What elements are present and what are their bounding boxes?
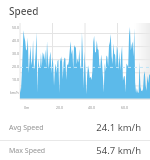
staticText: 0m: [24, 105, 30, 110]
staticText: 54.7 km/h: [96, 144, 141, 157]
button[interactable]: Max Speed: [0, 141, 150, 160]
staticText: km/h: [10, 90, 19, 95]
staticText: 20.0: [56, 105, 63, 110]
staticText: 60.0: [121, 105, 128, 110]
staticText: 30.0: [12, 51, 19, 56]
staticText: Avg Speed: [9, 123, 44, 133]
staticText: Speed: [9, 4, 39, 18]
staticText: 10.0: [12, 77, 19, 82]
staticText: 24.1 km/h: [96, 121, 141, 134]
staticText: 50.0: [12, 25, 19, 30]
staticText: 40.0: [12, 38, 19, 43]
staticText: Max Speed: [9, 146, 46, 156]
staticText: 20.0: [12, 64, 19, 69]
button[interactable]: Avg Speed: [0, 115, 150, 140]
staticText: 40.0: [88, 105, 95, 110]
button[interactable]: Speed chart: [0, 21, 150, 113]
